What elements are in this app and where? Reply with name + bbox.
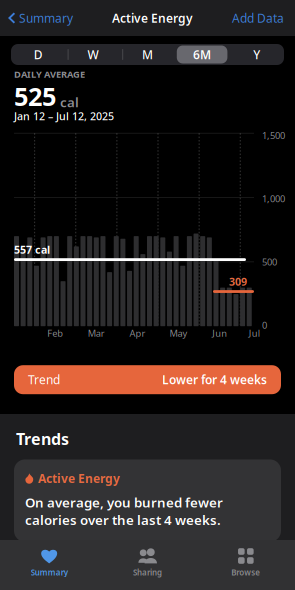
staticText: Lower for 4 weeks	[162, 372, 267, 388]
staticText: 1,500	[262, 129, 285, 142]
staticText: Active Energy	[38, 470, 120, 486]
button[interactable]: Sharing	[98, 540, 197, 590]
button[interactable]: Active Energy	[0, 459, 295, 542]
staticText: 0	[262, 319, 267, 331]
staticText: Apr	[129, 327, 145, 339]
staticText: Feb	[47, 327, 63, 339]
button[interactable]: Add Data	[226, 0, 295, 36]
button[interactable]: M	[120, 44, 175, 65]
staticText: Active Energy	[112, 10, 193, 26]
staticText: 6M	[193, 46, 211, 62]
staticText: Trends	[16, 428, 69, 449]
staticText: Jul	[249, 327, 260, 339]
staticText: Trend	[28, 372, 60, 388]
staticText: 557 cal	[14, 242, 50, 257]
button[interactable]: W	[66, 44, 120, 65]
staticText: 500	[262, 256, 277, 268]
staticText: M	[142, 46, 153, 62]
button[interactable]: Summary	[0, 540, 98, 590]
button[interactable]: Browse	[197, 540, 295, 590]
button[interactable]: 6M	[175, 44, 229, 65]
staticText: 525	[14, 79, 56, 113]
staticText: W	[87, 46, 98, 62]
staticText: D	[34, 46, 43, 62]
staticText: Sharing	[133, 567, 162, 578]
staticText: On average, you burned fewer calories ov…	[25, 493, 223, 529]
button[interactable]: Summary	[0, 0, 79, 36]
staticText: Jan 12 – Jul 12, 2025	[14, 109, 114, 123]
staticText: May	[169, 327, 187, 339]
staticText: Browse	[231, 567, 260, 578]
staticText: DAILY AVERAGE	[14, 68, 85, 80]
button[interactable]: Trend	[0, 365, 295, 394]
staticText: 1,000	[262, 192, 285, 205]
staticText: 309	[229, 274, 247, 289]
staticText: Summary	[31, 567, 68, 578]
staticText: Y	[253, 46, 260, 62]
button[interactable]: Y	[229, 44, 284, 65]
staticText: Summary	[19, 10, 73, 26]
button[interactable]: D	[11, 44, 66, 65]
staticText: cal	[60, 93, 79, 111]
staticText: Jun	[212, 327, 227, 339]
staticText: Add Data	[232, 10, 284, 26]
staticText: Mar	[88, 327, 105, 339]
